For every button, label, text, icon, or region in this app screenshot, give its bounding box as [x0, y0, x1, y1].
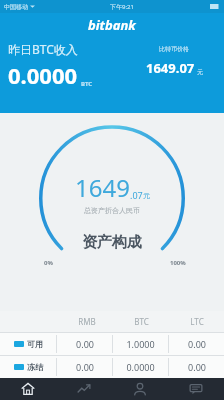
staticText: 0.00: [76, 338, 94, 350]
staticText: 100%: [170, 259, 186, 267]
staticText: 总资产折合人民币: [84, 206, 140, 215]
button[interactable]: Home: [0, 378, 56, 400]
button[interactable]: Markets: [56, 378, 112, 400]
staticText: 比特币价格: [159, 45, 189, 53]
staticText: 0.0000: [126, 361, 155, 373]
staticText: bitbank: [88, 16, 136, 34]
staticText: 下午9:21: [110, 3, 134, 11]
staticText: LTC: [190, 316, 204, 327]
staticText: 资产构成: [82, 233, 142, 252]
staticText: 中国移动: [4, 3, 28, 11]
staticText: 0.00: [188, 338, 206, 350]
staticText: 可用: [27, 339, 43, 349]
staticText: .07: [130, 189, 143, 201]
staticText: BTC: [81, 80, 93, 88]
staticText: 1.0000: [126, 338, 155, 350]
button[interactable]: Messages: [168, 378, 224, 400]
staticText: 0.00: [188, 361, 206, 373]
button[interactable]: 可用: [0, 333, 224, 355]
staticText: 元: [143, 191, 150, 200]
staticText: BTC: [134, 316, 149, 327]
staticText: 0.00: [76, 361, 94, 373]
staticText: 冻结: [27, 362, 43, 372]
staticText: 0.0000: [8, 60, 78, 90]
staticText: 昨日BTC收入: [8, 41, 78, 57]
button[interactable]: Account: [112, 378, 168, 400]
staticText: 元: [197, 68, 203, 76]
staticText: RMB: [78, 316, 96, 327]
staticText: 0%: [44, 259, 53, 267]
staticText: 1649: [75, 171, 130, 204]
button[interactable]: 冻结: [0, 356, 224, 378]
staticText: 1649.07: [146, 59, 195, 77]
